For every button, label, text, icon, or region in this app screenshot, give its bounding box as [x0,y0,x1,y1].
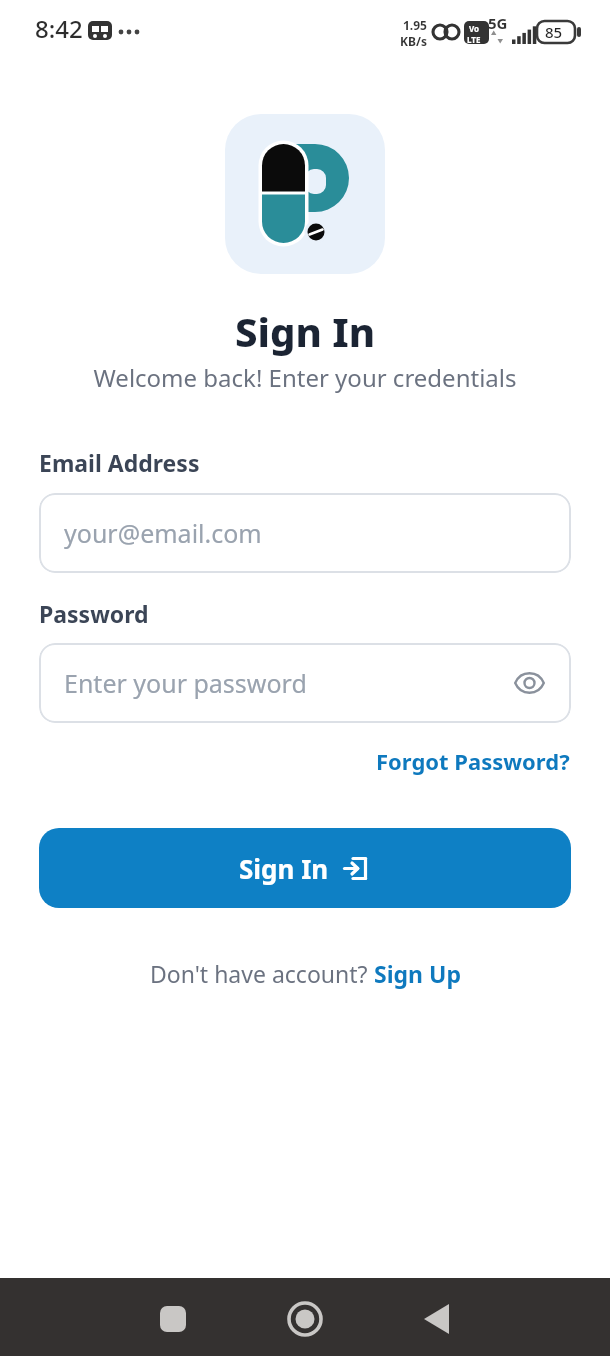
staticText: Sign In [0,304,610,358]
staticText: Don't have account? [150,958,374,989]
staticText: Enter your password [64,666,307,700]
staticText: Password [39,598,149,629]
staticText: Email Address [39,447,200,478]
button[interactable] [204,1278,407,1356]
staticText: Sign In [239,851,329,886]
staticText: 8:42 [35,12,83,45]
button[interactable]: Sign In [39,828,571,908]
button[interactable]: Enter your password [39,643,571,723]
button[interactable]: Sign Up [374,958,461,989]
button[interactable] [0,1278,204,1356]
staticText: 1.95 [403,17,427,33]
button[interactable] [407,1278,610,1356]
staticText: 5G [488,13,508,33]
button[interactable]: Forgot Password? [376,746,570,776]
staticText: 85 [545,22,563,42]
button[interactable]: your@email.com [39,493,571,573]
staticText: your@email.com [64,516,262,550]
staticText: Welcome back! Enter your credentials [0,361,610,394]
staticText: KB/s [400,33,427,49]
staticText: Vo [469,23,480,34]
staticText: LTE [467,34,481,45]
